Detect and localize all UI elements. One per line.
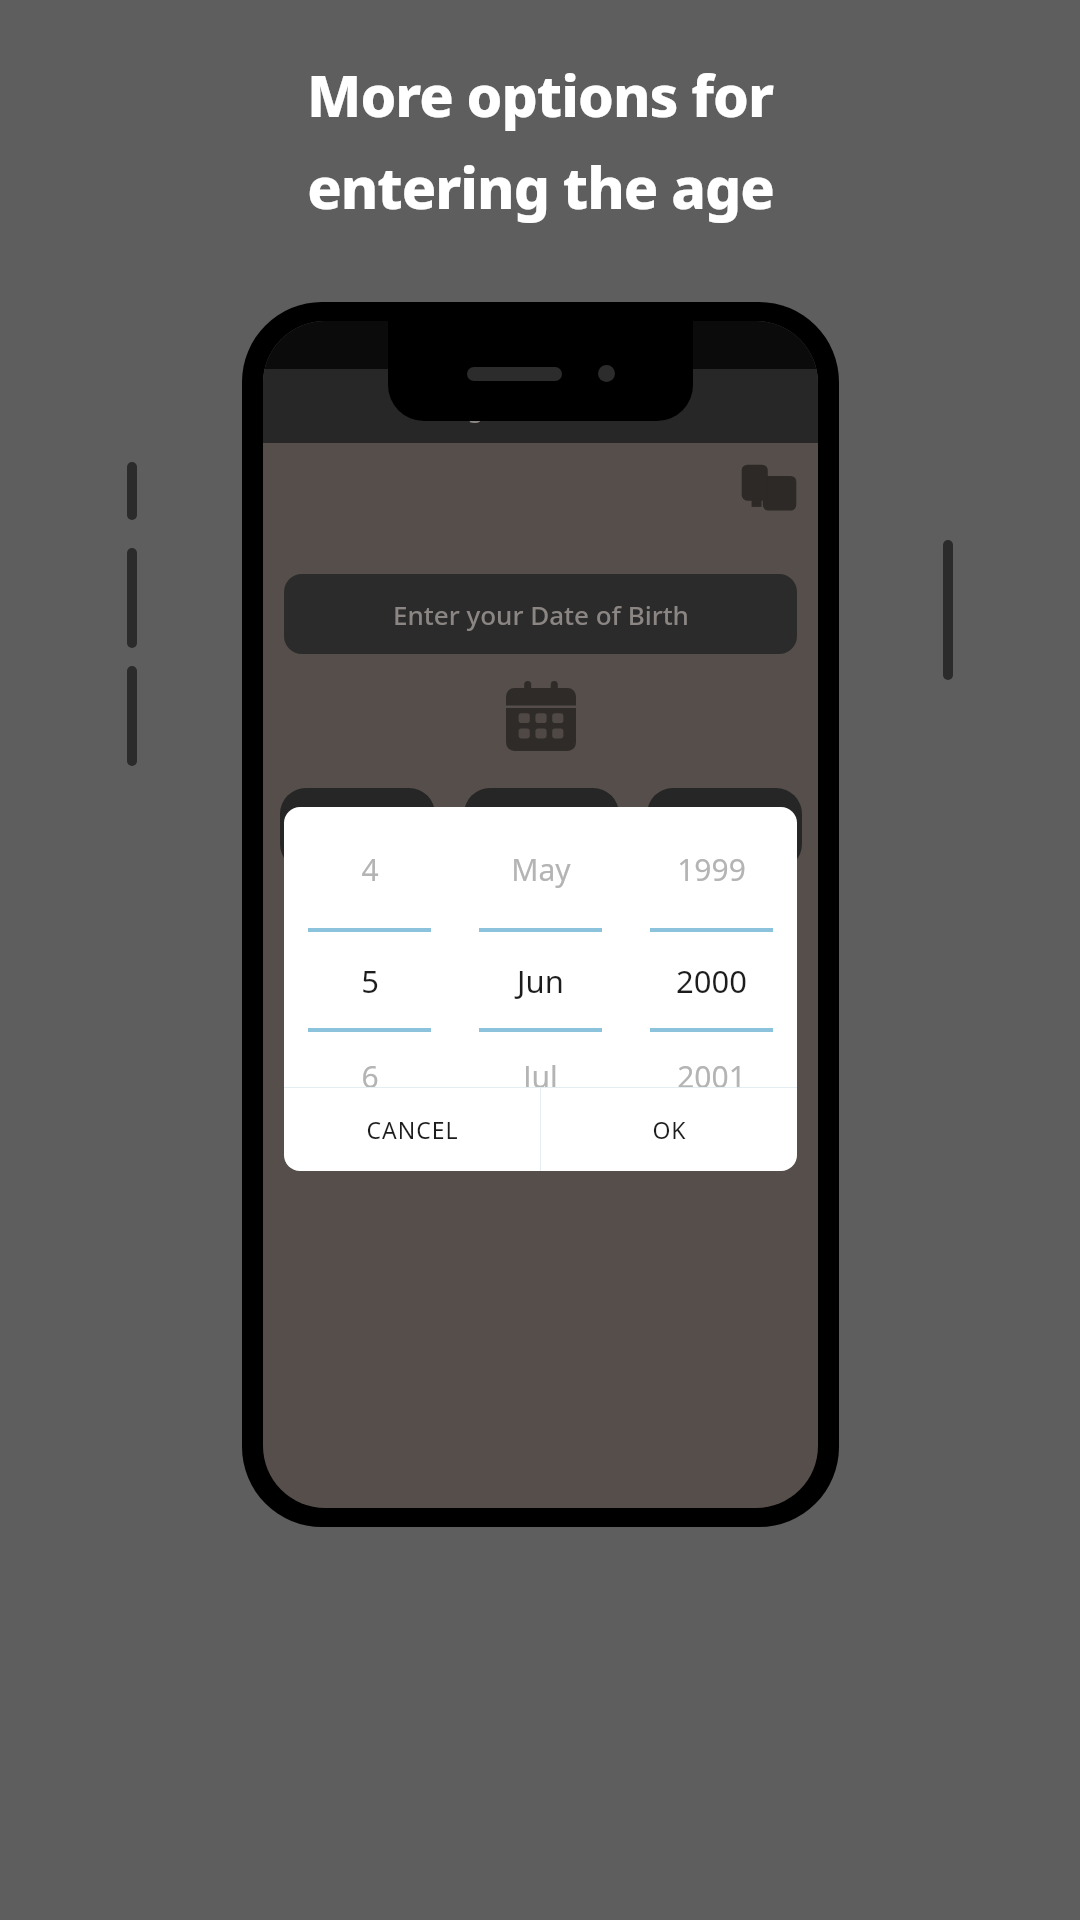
- staticText: Enter your Date of Birth: [393, 597, 689, 632]
- button[interactable]: [464, 788, 619, 870]
- staticText: OK: [652, 1114, 687, 1145]
- button[interactable]: 1999: [626, 807, 797, 1087]
- button[interactable]: 4: [284, 807, 455, 1087]
- staticText: 6: [361, 1056, 379, 1087]
- staticText: 2001: [677, 1056, 746, 1087]
- button[interactable]: May: [455, 807, 626, 1087]
- staticText: 1999: [677, 849, 746, 890]
- button[interactable]: [280, 788, 435, 870]
- staticText: 2000: [676, 960, 747, 1002]
- button[interactable]: [647, 788, 802, 870]
- button[interactable]: OK: [541, 1088, 797, 1171]
- staticText: 4: [361, 849, 379, 890]
- staticText: May: [511, 849, 571, 890]
- staticText: More options for: [307, 56, 773, 134]
- staticText: Jun: [517, 960, 564, 1002]
- staticText: Jul: [523, 1056, 558, 1087]
- button[interactable]: Enter your Date of Birth: [284, 574, 797, 654]
- staticText: Age Calculator: [450, 389, 632, 424]
- staticText: 5: [361, 960, 379, 1002]
- staticText: entering the age: [307, 148, 774, 226]
- button[interactable]: Translate: [738, 461, 800, 523]
- staticText: CANCEL: [366, 1114, 459, 1145]
- button[interactable]: CANCEL: [284, 1088, 540, 1171]
